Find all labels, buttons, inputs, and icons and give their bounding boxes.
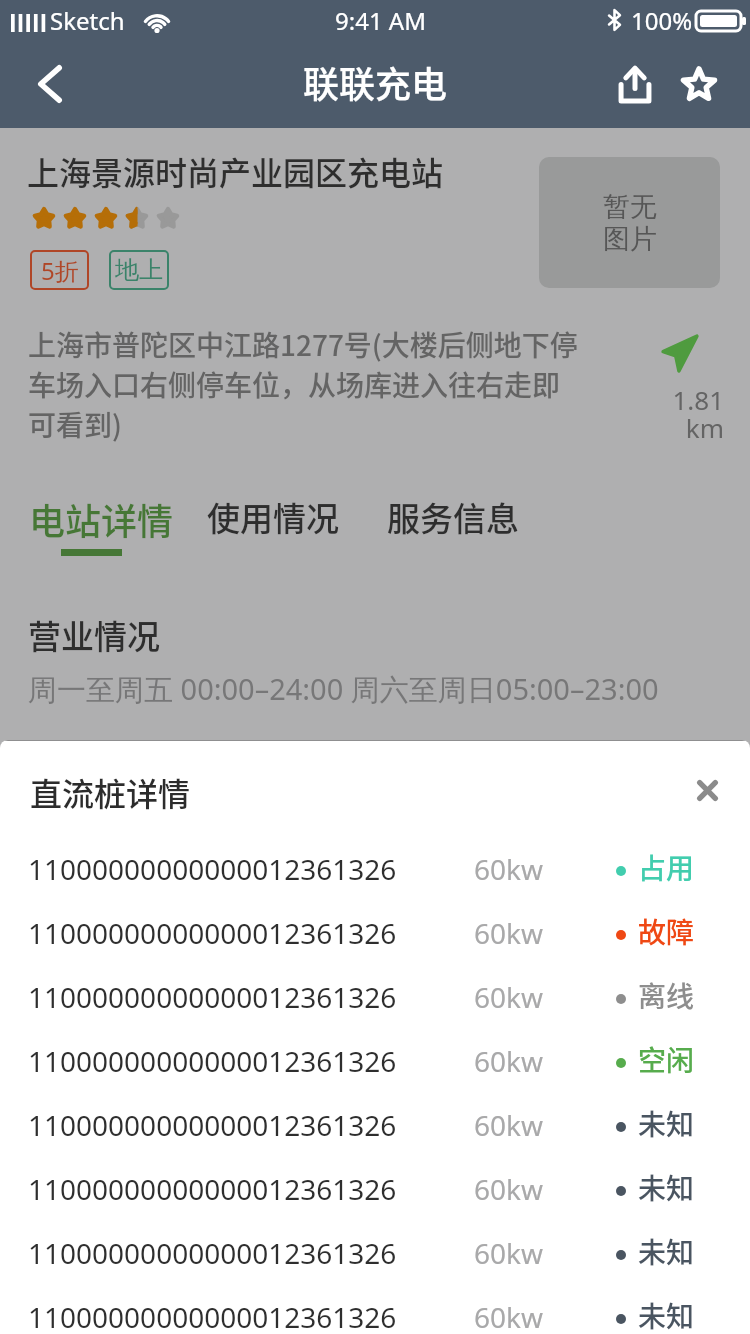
staticText: 未知 bbox=[638, 1295, 695, 1334]
button[interactable]: Share bbox=[600, 40, 670, 128]
staticText: 11000000000000012361326 bbox=[28, 914, 397, 952]
staticText: 11000000000000012361326 bbox=[28, 850, 397, 888]
staticText: 故障 bbox=[638, 911, 695, 952]
button[interactable]: 使用情况 bbox=[207, 493, 339, 541]
staticText: 11000000000000012361326 bbox=[28, 1170, 397, 1208]
button[interactable]: Back bbox=[10, 40, 90, 128]
button[interactable]: 11000000000000012361326 bbox=[0, 1157, 750, 1221]
staticText: 电站详情 bbox=[29, 493, 174, 545]
staticText: 上海市普陀区中江路1277号(大楼后侧地下停车场入口右侧停车位，从场库进入往右走… bbox=[28, 324, 584, 444]
button[interactable]: Favorite bbox=[664, 40, 734, 128]
staticText: 11000000000000012361326 bbox=[28, 1298, 397, 1334]
staticText: 周一至周五 00:00–24:00 周六至周日05:00–23:00 bbox=[28, 669, 659, 709]
button[interactable]: 11000000000000012361326 bbox=[0, 1285, 750, 1334]
button[interactable]: 11000000000000012361326 bbox=[0, 1029, 750, 1093]
staticText: 11000000000000012361326 bbox=[28, 978, 397, 1016]
staticText: 60kw bbox=[474, 914, 543, 952]
staticText: 9:41 AM bbox=[335, 4, 426, 37]
staticText: 直流桩详情 bbox=[30, 769, 191, 815]
staticText: 5折 bbox=[41, 254, 79, 287]
staticText: 60kw bbox=[474, 1234, 543, 1272]
staticText: km bbox=[634, 410, 724, 445]
staticText: 离线 bbox=[638, 975, 695, 1016]
staticText: 暂无 图片 bbox=[603, 190, 657, 256]
button[interactable]: 11000000000000012361326 bbox=[0, 901, 750, 965]
staticText: 使用情况 bbox=[207, 493, 339, 541]
staticText: 营业情况 bbox=[28, 611, 160, 659]
button[interactable]: 11000000000000012361326 bbox=[0, 965, 750, 1029]
staticText: 60kw bbox=[474, 1298, 543, 1334]
staticText: 60kw bbox=[474, 1042, 543, 1080]
staticText: 11000000000000012361326 bbox=[28, 1234, 397, 1272]
staticText: 60kw bbox=[474, 978, 543, 1016]
staticText: 100% bbox=[631, 4, 693, 37]
staticText: 服务信息 bbox=[387, 493, 519, 541]
staticText: 空闲 bbox=[638, 1039, 695, 1080]
button[interactable]: Close bbox=[679, 762, 735, 818]
staticText: 11000000000000012361326 bbox=[28, 1042, 397, 1080]
staticText: 未知 bbox=[638, 1167, 695, 1208]
button[interactable]: 电站详情 bbox=[29, 493, 174, 545]
button[interactable]: 11000000000000012361326 bbox=[0, 1093, 750, 1157]
staticText: 未知 bbox=[638, 1103, 695, 1144]
button[interactable]: 11000000000000012361326 bbox=[0, 837, 750, 901]
staticText: 上海景源时尚产业园区充电站 bbox=[27, 148, 444, 194]
staticText: 占用 bbox=[638, 847, 695, 888]
staticText: 未知 bbox=[638, 1231, 695, 1272]
staticText: 1.81 bbox=[634, 382, 724, 417]
staticText: 60kw bbox=[474, 1106, 543, 1144]
staticText: 联联充电 bbox=[303, 56, 448, 108]
button[interactable]: 11000000000000012361326 bbox=[0, 1221, 750, 1285]
staticText: 11000000000000012361326 bbox=[28, 1106, 397, 1144]
button[interactable]: 服务信息 bbox=[387, 493, 519, 541]
staticText: 地上 bbox=[115, 255, 163, 285]
staticText: 60kw bbox=[474, 1170, 543, 1208]
staticText: Sketch bbox=[50, 4, 125, 37]
staticText: 60kw bbox=[474, 850, 543, 888]
